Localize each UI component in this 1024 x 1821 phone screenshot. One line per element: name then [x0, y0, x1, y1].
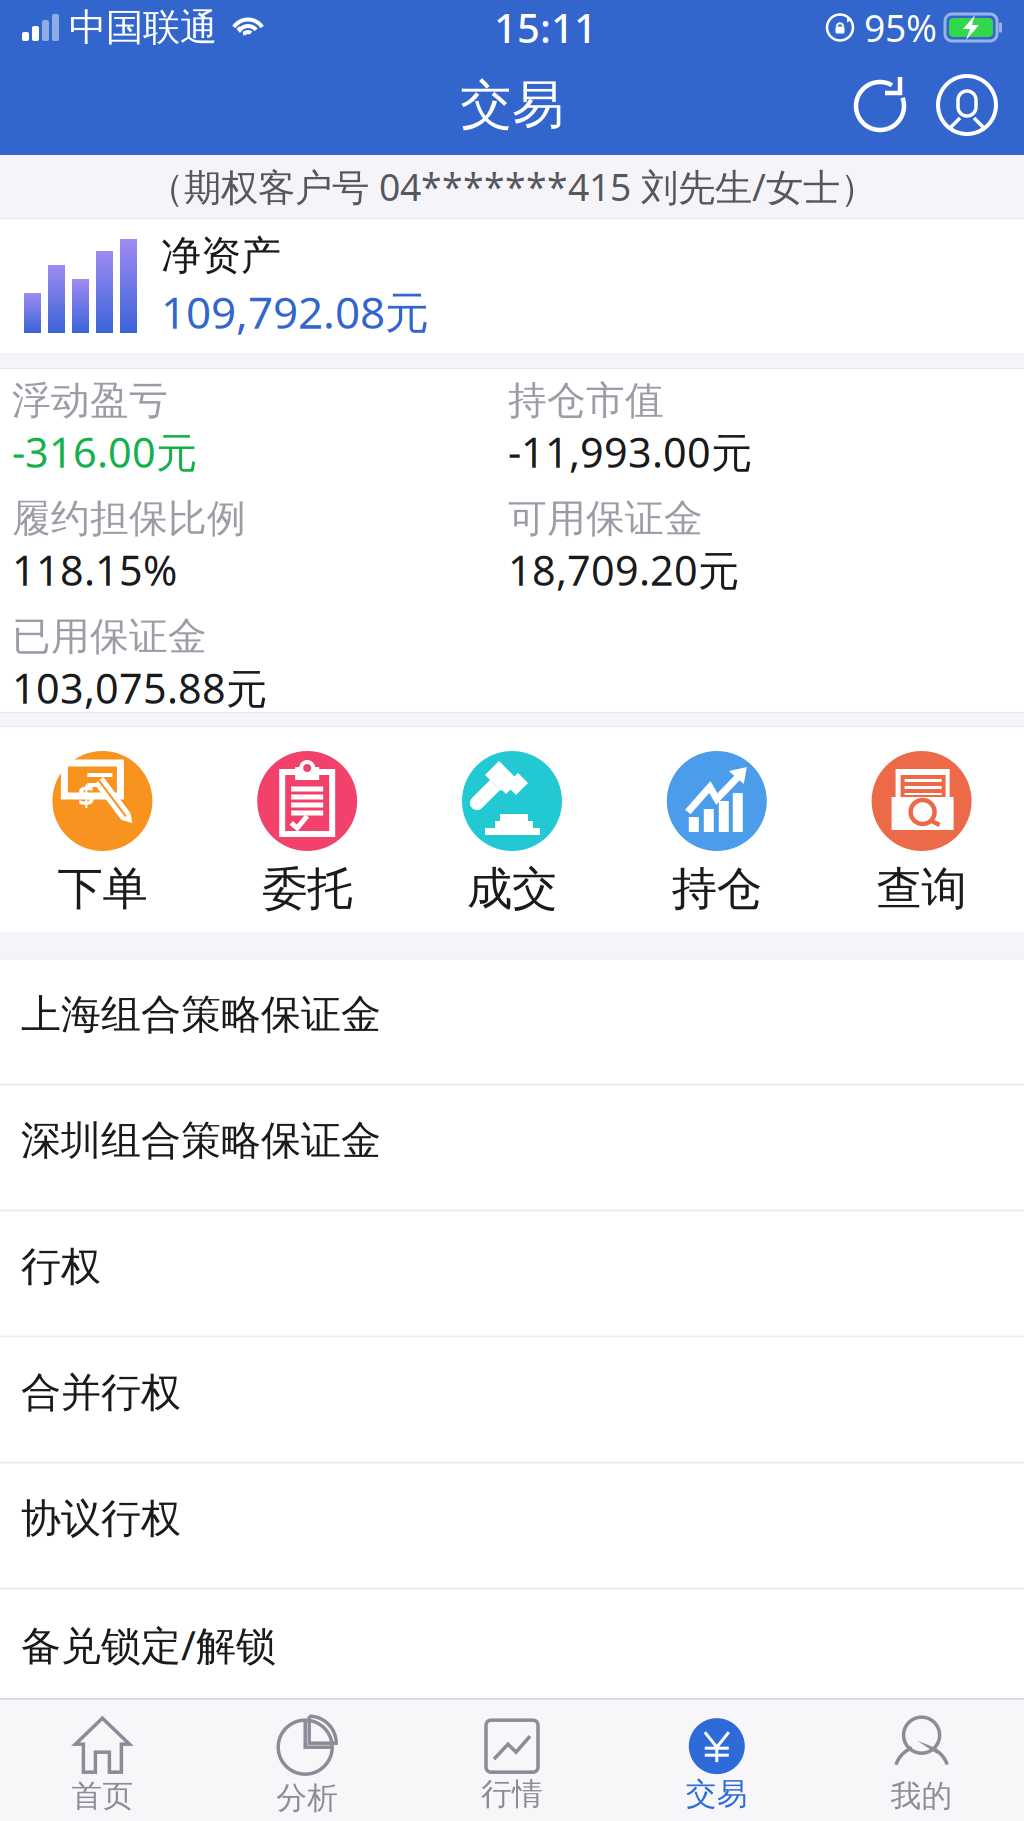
button[interactable]: 上海组合策略保证金 — [0, 960, 1024, 1084]
staticText: 上海组合策略保证金 — [21, 990, 381, 1039]
staticText: 履约担保比例 — [12, 495, 246, 542]
staticText: 查询 — [877, 861, 967, 917]
button[interactable]: 查询 — [819, 751, 1024, 917]
staticText: 净资产 — [161, 231, 281, 280]
staticText: 委托 — [262, 861, 352, 917]
button[interactable]: 分析 — [205, 1700, 410, 1821]
staticText: $ — [78, 775, 95, 814]
staticText: 交易 — [686, 1775, 748, 1813]
staticText: 18,709.20元 — [508, 542, 739, 597]
staticText: 浮动盈亏 — [12, 377, 168, 424]
button[interactable]: 持仓 — [614, 751, 819, 917]
staticText: 118.15% — [12, 542, 177, 597]
staticText: 行情 — [481, 1775, 543, 1813]
staticText: -316.00元 — [12, 424, 197, 479]
staticText: 下单 — [57, 861, 147, 917]
staticText: 成交 — [467, 861, 557, 917]
button[interactable]: 我的 — [819, 1700, 1024, 1821]
staticText: 深圳组合策略保证金 — [21, 1116, 381, 1165]
button[interactable]: 成交 — [410, 751, 614, 917]
staticText: 中国联通 — [69, 5, 217, 50]
button[interactable]: 首页 — [0, 1700, 205, 1821]
button[interactable]: 行情 — [410, 1700, 614, 1821]
staticText: 分析 — [276, 1779, 338, 1817]
button[interactable]: 协议行权 — [0, 1464, 1024, 1588]
staticText: 备兑锁定/解锁 — [21, 1618, 276, 1671]
staticText: 持仓 — [672, 861, 762, 917]
staticText: 协议行权 — [21, 1494, 181, 1543]
button[interactable]: Account — [924, 62, 1010, 148]
staticText: （期权客户号 04*******415 刘先生/女士） — [147, 162, 877, 211]
staticText: 已用保证金 — [12, 613, 207, 660]
staticText: 合并行权 — [21, 1368, 181, 1417]
button[interactable]: 深圳组合策略保证金 — [0, 1086, 1024, 1210]
button[interactable]: 行权 — [0, 1212, 1024, 1336]
staticText: 103,075.88元 — [12, 660, 267, 715]
staticText: 我的 — [891, 1777, 953, 1815]
staticText: -11,993.00元 — [508, 424, 752, 479]
button[interactable]: 委托 — [205, 751, 410, 917]
staticText: 交易 — [460, 73, 564, 137]
button[interactable]: 备兑锁定/解锁 — [0, 1590, 1024, 1714]
staticText: 持仓市值 — [508, 377, 664, 424]
button[interactable]: 交易 — [614, 1700, 819, 1821]
staticText — [508, 662, 519, 717]
button[interactable]: Refresh — [838, 62, 924, 148]
staticText: 95% — [864, 3, 937, 52]
button[interactable]: $ — [0, 751, 205, 917]
staticText: 行权 — [21, 1242, 101, 1291]
staticText: 首页 — [71, 1777, 133, 1815]
staticText: 109,792.08元 — [161, 282, 429, 341]
staticText: 可用保证金 — [508, 495, 703, 542]
staticText: 15:11 — [494, 1, 597, 54]
button[interactable]: 合并行权 — [0, 1338, 1024, 1462]
